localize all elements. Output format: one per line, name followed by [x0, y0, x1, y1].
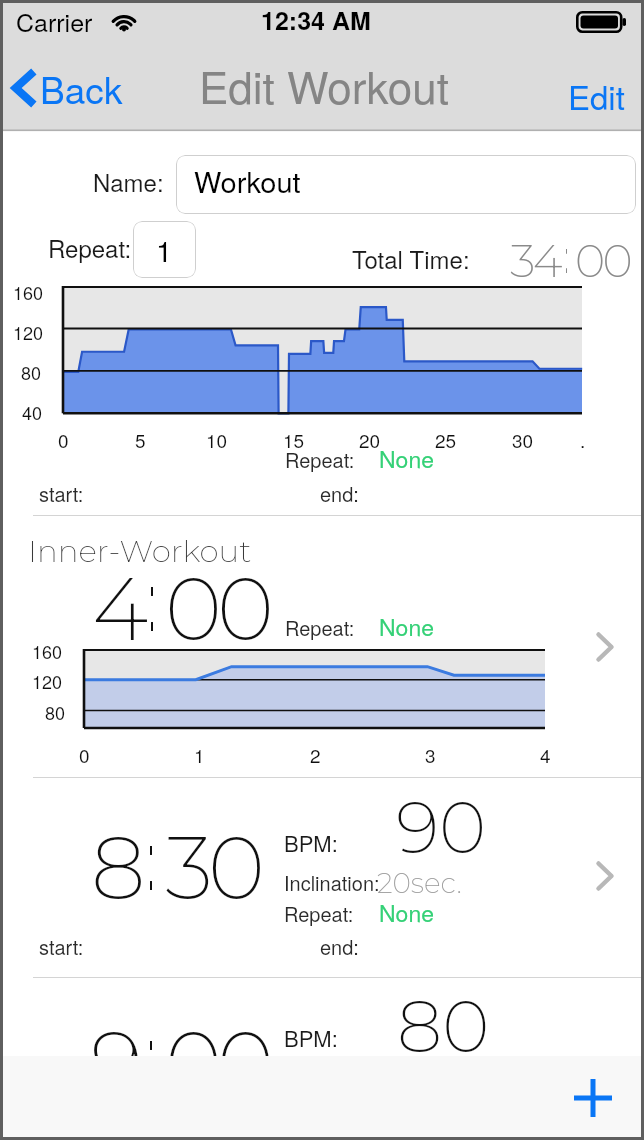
button[interactable]: Open details [597, 633, 613, 661]
staticText: Workout [194, 160, 301, 202]
staticText: 10 [206, 426, 228, 453]
staticText: Repeat: [285, 445, 355, 474]
staticText: None [379, 610, 434, 643]
staticText: 2 [310, 741, 321, 768]
staticText: BPM: [284, 1022, 338, 1054]
button[interactable]: Edit [568, 72, 625, 119]
staticText: 1 [194, 741, 205, 768]
staticText: Repeat: [284, 899, 354, 928]
staticText: 40 [22, 399, 43, 425]
staticText: 80 [397, 982, 490, 1070]
button[interactable]: Workout [176, 155, 636, 214]
staticText: Edit [568, 72, 625, 119]
staticText: 4 [92, 556, 144, 662]
button[interactable] [0, 978, 644, 1056]
staticText: Inclination: [284, 868, 380, 897]
staticText: Edit Workout [199, 53, 449, 116]
button[interactable] [0, 778, 644, 977]
staticText: 0 [58, 426, 69, 453]
staticText: 80 [45, 699, 66, 725]
button[interactable]: 1 [133, 221, 196, 278]
staticText: 15 [283, 426, 305, 453]
staticText: . [580, 426, 586, 453]
staticText: None [379, 896, 434, 929]
button[interactable]: Back [12, 60, 123, 116]
staticText: Inner-Workout [28, 532, 252, 570]
button[interactable]: Add interval [561, 1066, 625, 1130]
staticText: Repeat: [285, 613, 355, 642]
staticText: Carrier [16, 3, 93, 39]
staticText: Total Time: [352, 241, 470, 275]
staticText: 25 [435, 426, 457, 453]
staticText: 00 [575, 232, 631, 288]
staticText: 9 [91, 1010, 138, 1116]
staticText: 4 [540, 741, 551, 768]
staticText: start: [39, 479, 84, 508]
staticText: None [379, 442, 434, 475]
staticText: 160 [32, 638, 63, 664]
staticText: 20sec. [377, 866, 462, 900]
staticText: 120 [32, 668, 63, 694]
staticText: 00 [165, 1010, 269, 1116]
button[interactable] [0, 516, 644, 777]
staticText: 160 [13, 279, 44, 305]
staticText: end: [320, 932, 359, 961]
staticText: start: [39, 932, 84, 961]
staticText: Repeat: [48, 230, 132, 264]
staticText: 90 [396, 783, 487, 871]
staticText: 30 [165, 815, 261, 921]
staticText: 80 [21, 359, 42, 385]
staticText: 1 [156, 229, 173, 271]
staticText: 0 [79, 741, 90, 768]
staticText: 34 [510, 232, 560, 288]
staticText: Name: [93, 164, 164, 198]
staticText: end: [320, 479, 359, 508]
staticText: 30 [512, 426, 534, 453]
staticText: 120 [13, 319, 44, 345]
staticText: BPM: [284, 827, 338, 859]
staticText: Back [40, 62, 123, 115]
staticText: 8 [91, 815, 141, 921]
button[interactable]: Open details [597, 862, 613, 890]
staticText: 3 [425, 741, 436, 768]
staticText: 00 [165, 556, 269, 662]
staticText: 20 [359, 426, 381, 453]
staticText: 12:34 AM [261, 2, 371, 38]
staticText: 5 [135, 426, 146, 453]
